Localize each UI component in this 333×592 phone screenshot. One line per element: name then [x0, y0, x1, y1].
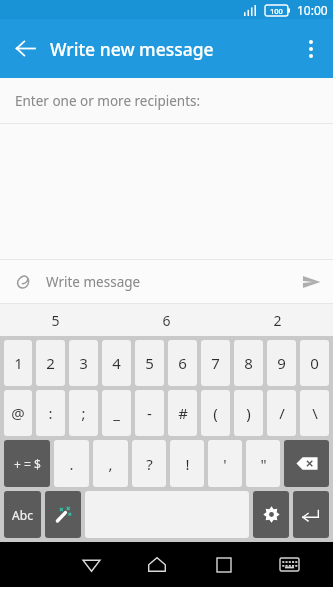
button[interactable]: ; — [69, 390, 98, 436]
button[interactable]: Attach file — [0, 260, 46, 303]
button[interactable]: 0 — [300, 340, 329, 386]
staticText: 6 — [162, 311, 171, 330]
staticText: 1 — [14, 353, 23, 373]
button[interactable]: Home — [133, 542, 181, 587]
button[interactable]: @ — [4, 390, 32, 436]
staticText: 10:00 — [297, 2, 328, 18]
staticText: ; — [81, 403, 86, 423]
staticText: ( — [213, 403, 218, 423]
button[interactable]: " — [246, 440, 280, 487]
button[interactable]: 5 — [135, 340, 164, 386]
staticText: / — [279, 403, 285, 423]
staticText: Enter one or more recipients: — [15, 92, 201, 110]
staticText: Write new message — [50, 37, 293, 61]
button[interactable]: : — [36, 390, 65, 436]
button[interactable]: 1 — [4, 340, 32, 386]
staticText: 7 — [211, 353, 220, 373]
staticText: ' — [223, 454, 227, 474]
button[interactable]: 8 — [234, 340, 263, 386]
button[interactable]: 2 — [222, 304, 333, 336]
button[interactable]: # — [168, 390, 197, 436]
staticText: ! — [185, 454, 190, 474]
button[interactable]: Back — [67, 542, 115, 587]
button[interactable]: . — [54, 440, 89, 487]
button[interactable]: ! — [170, 440, 204, 487]
staticText: " — [260, 454, 267, 474]
staticText: 6 — [178, 353, 187, 373]
button[interactable]: ? — [132, 440, 166, 487]
staticText: Abc — [12, 507, 33, 523]
staticText: + = $ — [14, 456, 41, 472]
button[interactable]: Settings — [253, 491, 289, 538]
staticText: 4 — [112, 353, 121, 373]
button[interactable]: - — [135, 390, 164, 436]
staticText: 5 — [51, 311, 60, 330]
staticText: 2 — [46, 353, 55, 373]
staticText: : — [48, 403, 53, 423]
button[interactable]: More options — [293, 19, 329, 78]
staticText: Write message — [46, 273, 289, 291]
button[interactable]: Voice or tools — [45, 491, 81, 538]
button[interactable]: Recent apps — [200, 542, 248, 587]
button[interactable]: ' — [208, 440, 242, 487]
button[interactable]: 5 — [0, 304, 111, 336]
button[interactable]: \ — [300, 390, 329, 436]
staticText: 5 — [145, 353, 154, 373]
button[interactable]: 7 — [201, 340, 230, 386]
staticText: , — [108, 454, 113, 474]
button[interactable]: 2 — [36, 340, 65, 386]
staticText: - — [147, 403, 152, 423]
button[interactable]: 6 — [168, 340, 197, 386]
button[interactable]: Enter one or more recipients: — [0, 78, 333, 124]
button[interactable]: _ — [102, 390, 131, 436]
staticText: . — [69, 454, 74, 474]
button[interactable]: + = $ — [4, 440, 50, 487]
button[interactable]: , — [93, 440, 128, 487]
button[interactable]: 4 — [102, 340, 131, 386]
staticText: ? — [146, 454, 153, 474]
button[interactable]: Send — [289, 260, 333, 303]
button[interactable]: ) — [234, 390, 263, 436]
button[interactable]: Navigate up — [0, 19, 50, 78]
button[interactable]: / — [267, 390, 296, 436]
staticText: 9 — [277, 353, 286, 373]
button[interactable]: 6 — [111, 304, 222, 336]
button[interactable]: Abc — [4, 491, 41, 538]
staticText: _ — [113, 403, 120, 423]
staticText: 8 — [244, 353, 253, 373]
staticText: 100 — [270, 6, 283, 16]
button[interactable]: Enter — [293, 491, 329, 538]
staticText: @ — [11, 403, 25, 423]
button[interactable]: Change keyboard — [266, 542, 312, 587]
staticText: 0 — [310, 353, 319, 373]
button[interactable]: 9 — [267, 340, 296, 386]
button[interactable]: ( — [201, 390, 230, 436]
staticText: # — [178, 403, 188, 423]
button[interactable]: 3 — [69, 340, 98, 386]
staticText: 2 — [273, 311, 282, 330]
button[interactable]: Backspace — [284, 440, 329, 487]
staticText: 3 — [79, 353, 88, 373]
staticText: \ — [312, 403, 318, 423]
staticText: ) — [246, 403, 251, 423]
